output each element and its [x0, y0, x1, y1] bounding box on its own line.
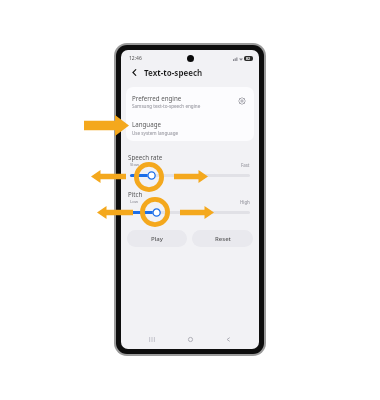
staticText: High [240, 199, 250, 205]
button[interactable]: Preferred engine [126, 87, 254, 114]
button[interactable]: Back [127, 65, 141, 79]
staticText: Slow [130, 162, 140, 168]
staticText: Low [130, 199, 138, 205]
button[interactable]: Play [127, 230, 187, 247]
staticText: Samsung text-to-speech engine [132, 103, 201, 109]
staticText: Use system language [132, 130, 179, 136]
staticText: Language [132, 120, 161, 128]
button[interactable]: Reset [192, 230, 253, 247]
button[interactable]: Language [126, 114, 254, 141]
button[interactable]: Back [221, 332, 235, 346]
staticText: Preferred engine [132, 94, 182, 102]
button[interactable] [130, 208, 250, 218]
staticText: 82 [246, 56, 251, 61]
button[interactable]: Home [183, 332, 197, 346]
staticText: Text-to-speech [144, 67, 203, 78]
staticText: Speech rate [128, 153, 163, 161]
button[interactable] [130, 171, 250, 181]
staticText: 12:46 [129, 55, 142, 62]
staticText: Pitch [128, 190, 143, 198]
button[interactable]: Recents [145, 332, 159, 346]
staticText: Reset [215, 235, 231, 243]
button[interactable]: Engine settings [235, 94, 248, 107]
staticText: Play [151, 235, 163, 243]
staticText: Fast [241, 162, 250, 168]
